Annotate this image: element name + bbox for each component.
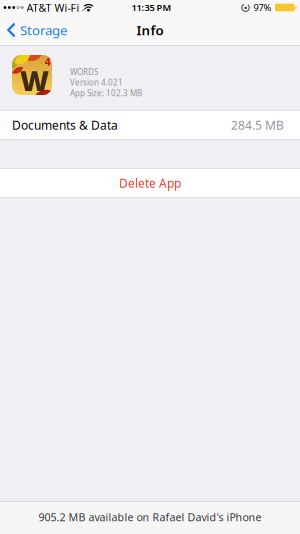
staticText: Info	[136, 21, 163, 39]
staticText: Documents & Data	[12, 117, 118, 133]
staticText: WORDS	[70, 67, 98, 77]
staticText: Storage	[20, 21, 68, 39]
staticText: 11:35 PM	[131, 1, 171, 14]
staticText: 905.2 MB available on Rafael David's iPh…	[38, 510, 261, 524]
button[interactable]: Storage	[7, 21, 68, 39]
button[interactable]: Delete App	[0, 169, 300, 197]
staticText: Version 4.021	[70, 77, 123, 88]
button[interactable]: Documents & Data	[0, 111, 300, 139]
staticText: 4	[44, 54, 50, 69]
staticText: W	[20, 62, 49, 99]
staticText: App Size: 102.3 MB	[70, 88, 142, 98]
staticText: AT&T Wi-Fi	[26, 0, 79, 15]
staticText: 97%	[253, 1, 271, 14]
staticText: Delete App	[119, 175, 181, 191]
staticText: 284.5 MB	[231, 117, 284, 133]
